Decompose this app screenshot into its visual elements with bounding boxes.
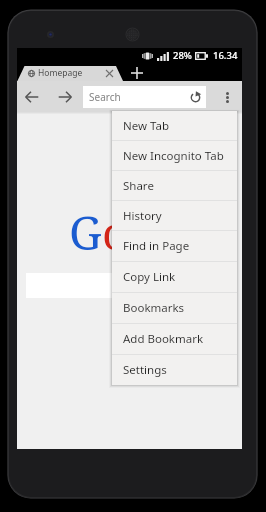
button[interactable]: Search bbox=[83, 86, 206, 108]
button[interactable]: Settings bbox=[112, 355, 237, 385]
staticText: g bbox=[156, 201, 181, 264]
staticText: Homepage bbox=[38, 67, 83, 79]
staticText: Copy Link bbox=[123, 269, 176, 285]
button[interactable]: Forward bbox=[54, 86, 76, 108]
staticText: Share bbox=[123, 178, 154, 194]
staticText: 16.34 bbox=[213, 49, 238, 62]
button[interactable] bbox=[26, 273, 206, 298]
staticText: Settings bbox=[123, 362, 167, 378]
staticText: New Incognito Tab bbox=[123, 148, 224, 164]
button[interactable]: Close tab bbox=[102, 66, 116, 80]
button[interactable]: Bookmarks bbox=[112, 293, 237, 323]
button[interactable]: New tab bbox=[129, 65, 145, 81]
button[interactable]: New Incognito Tab bbox=[112, 141, 237, 170]
staticText: Find in Page bbox=[123, 238, 190, 254]
staticText: o bbox=[129, 201, 156, 264]
button[interactable]: Copy Link bbox=[112, 262, 237, 292]
button[interactable]: Share bbox=[112, 171, 237, 200]
staticText: History bbox=[123, 208, 162, 224]
button[interactable]: Find in Page bbox=[112, 231, 237, 261]
staticText: 28% bbox=[173, 49, 192, 62]
staticText: New Tab bbox=[123, 118, 170, 134]
staticText: o bbox=[102, 201, 129, 264]
button[interactable]: More options bbox=[216, 86, 238, 108]
staticText: G bbox=[69, 201, 102, 264]
staticText: l bbox=[181, 201, 196, 264]
staticText: Search bbox=[89, 90, 121, 104]
button[interactable]: New Tab bbox=[112, 111, 237, 140]
button[interactable]: Add Bookmark bbox=[112, 324, 237, 354]
button[interactable]: History bbox=[112, 201, 237, 230]
staticText: Add Bookmark bbox=[123, 331, 204, 347]
button[interactable]: Homepage bbox=[17, 65, 116, 81]
button[interactable]: Back bbox=[21, 86, 43, 108]
staticText: Bookmarks bbox=[123, 300, 185, 316]
